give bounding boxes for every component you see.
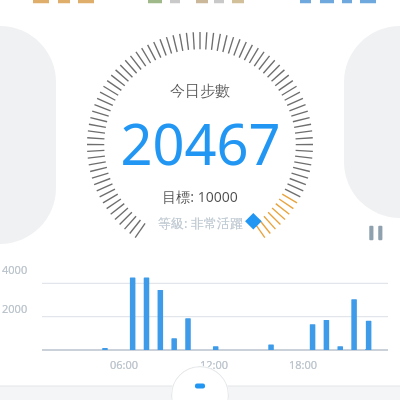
button[interactable]: Next card <box>344 26 400 218</box>
staticText: 等級: 非常活躍 <box>158 214 243 232</box>
button[interactable]: Add <box>171 366 229 400</box>
button[interactable]: Activity chart <box>0 258 400 378</box>
button[interactable]: Pause <box>361 218 391 248</box>
staticText: 今日步數 <box>170 82 230 101</box>
staticText: 12:00 <box>200 357 229 372</box>
staticText: 20467 <box>120 105 281 181</box>
staticText: 2000 <box>2 301 28 316</box>
button[interactable]: Today steps gauge <box>85 30 315 260</box>
button[interactable]: Previous card <box>0 26 56 244</box>
staticText: 06:00 <box>110 357 139 372</box>
staticText: 4000 <box>2 262 28 277</box>
staticText: 目標: 10000 <box>162 187 238 206</box>
staticText: 18:00 <box>289 357 318 372</box>
